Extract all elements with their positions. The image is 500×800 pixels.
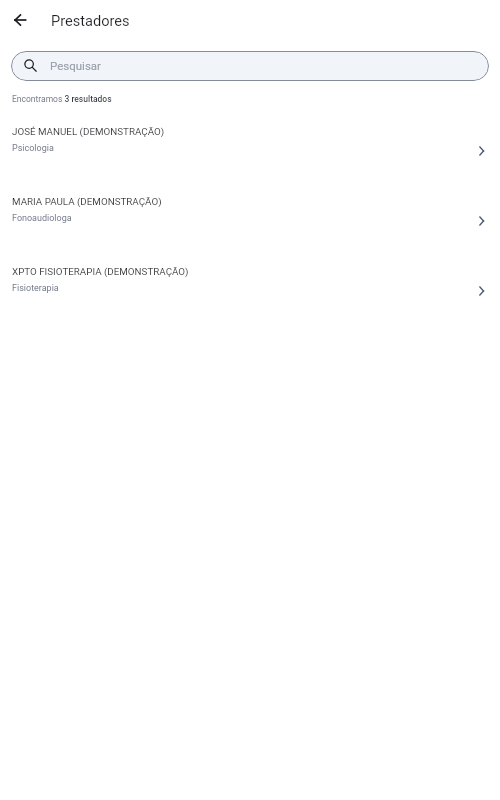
staticText: Prestadores xyxy=(51,12,130,29)
button[interactable]: Pesquisar xyxy=(11,51,489,81)
button[interactable]: MARIA PAULA (DEMONSTRAÇÃO) xyxy=(0,188,500,258)
staticText: Encontramos 3 resultados xyxy=(12,94,112,104)
button[interactable]: Back xyxy=(6,6,34,34)
staticText: Pesquisar xyxy=(50,59,101,72)
staticText: Fonoaudiologa xyxy=(12,213,72,224)
staticText: MARIA PAULA (DEMONSTRAÇÃO) xyxy=(12,196,162,207)
button[interactable]: JOSÉ MANUEL (DEMONSTRAÇÃO) xyxy=(0,118,500,188)
staticText: JOSÉ MANUEL (DEMONSTRAÇÃO) xyxy=(12,126,165,137)
staticText: Psicologia xyxy=(12,143,54,154)
button[interactable]: XPTO FISIOTERAPIA (DEMONSTRAÇÃO) xyxy=(0,258,500,328)
staticText: XPTO FISIOTERAPIA (DEMONSTRAÇÃO) xyxy=(12,266,189,277)
staticText: Fisioterapia xyxy=(12,283,59,294)
